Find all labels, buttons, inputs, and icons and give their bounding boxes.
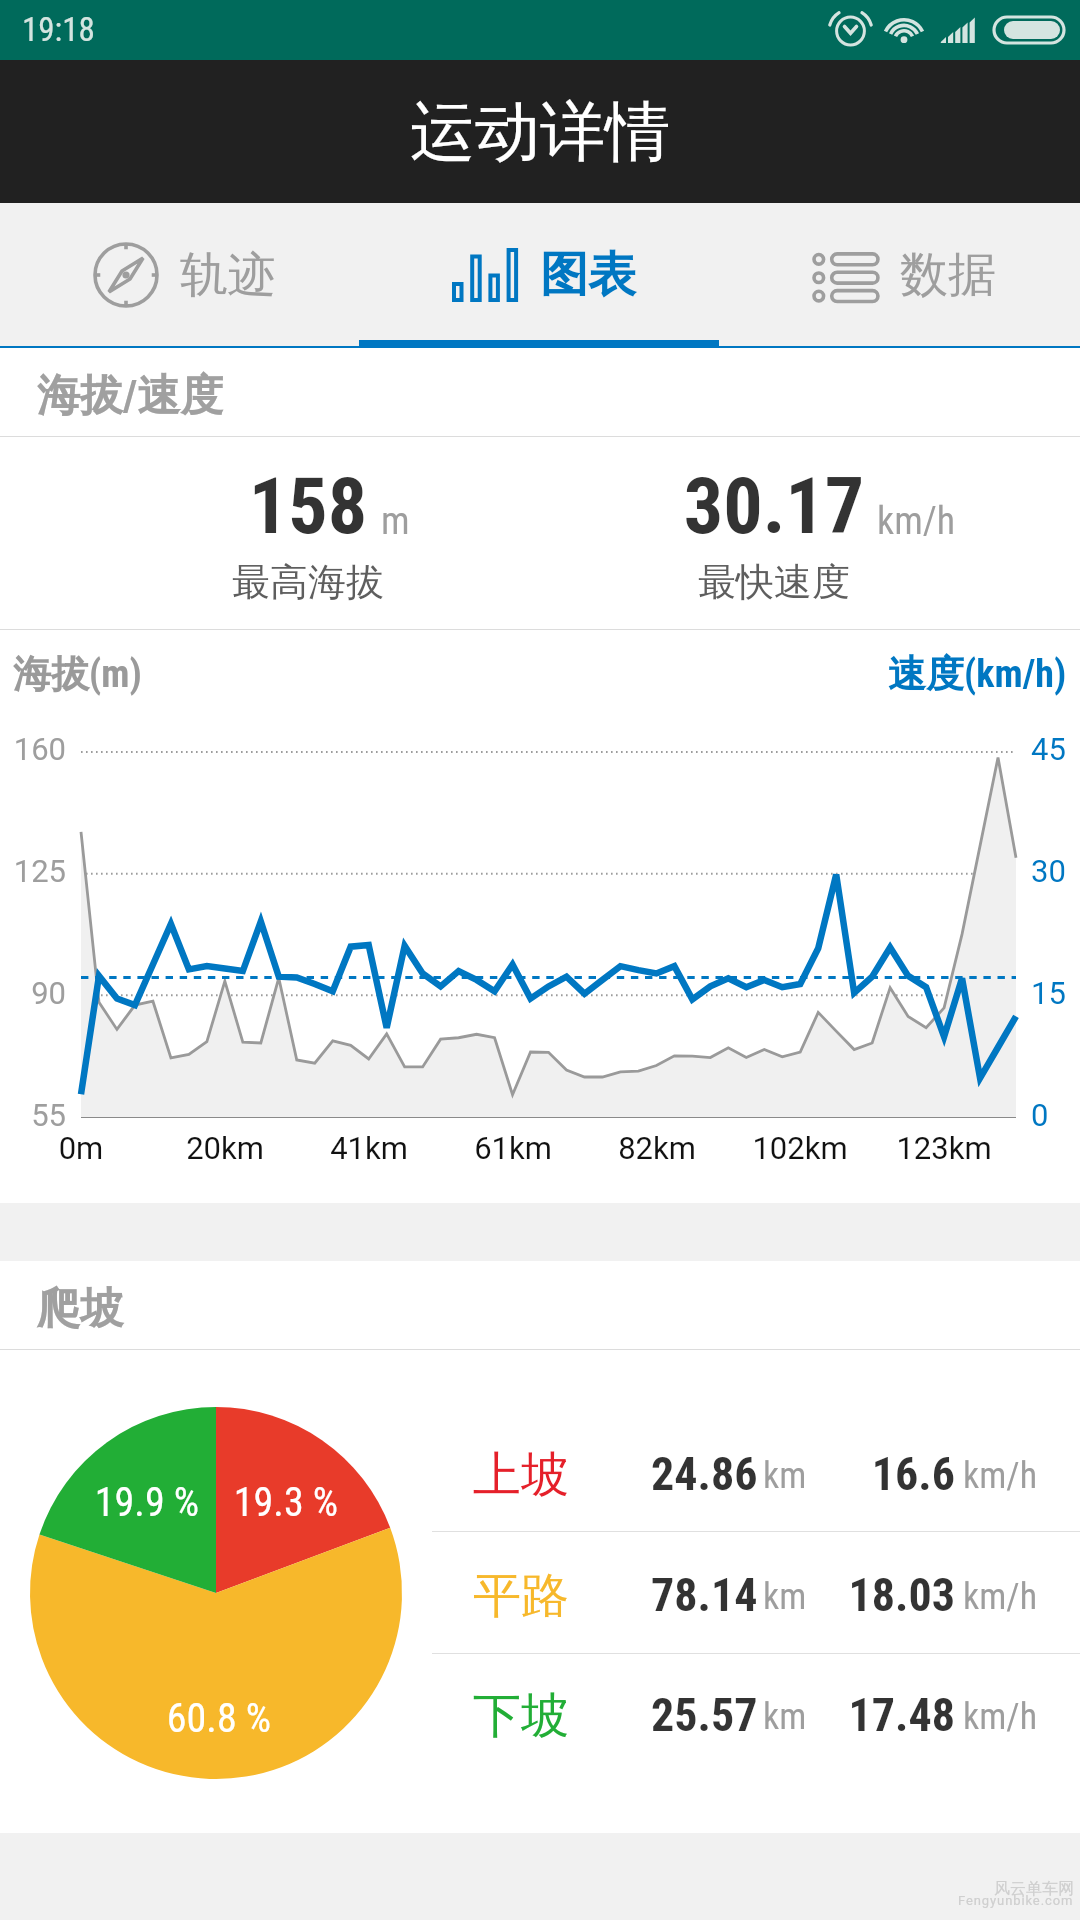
staticText: 数据 <box>900 245 996 305</box>
staticText: km <box>763 1696 807 1738</box>
staticText: 78.14 <box>651 1568 758 1622</box>
button[interactable] <box>432 1537 1080 1659</box>
staticText: km <box>763 1455 807 1497</box>
staticText: Fengyunbike.com <box>958 1893 1074 1908</box>
button[interactable]: 数据 <box>720 203 1080 348</box>
staticText: 爬坡 <box>37 1282 123 1336</box>
staticText: 19.3 % <box>166 1479 406 1526</box>
staticText: 19.9 % <box>27 1479 267 1526</box>
staticText: 风云单车网 <box>994 1879 1074 1899</box>
staticText: 158 <box>78 461 538 552</box>
button[interactable]: 轨迹 <box>0 203 360 348</box>
staticText: 20km <box>145 1130 305 1166</box>
staticText: 下坡 <box>473 1686 569 1746</box>
staticText: 41km <box>289 1130 449 1166</box>
staticText: 图表 <box>540 245 636 305</box>
staticText: 最高海拔 <box>78 558 538 606</box>
staticText: 上坡 <box>473 1445 569 1505</box>
staticText: 最快速度 <box>544 558 1004 606</box>
staticText: km/h <box>963 1576 1038 1618</box>
staticText: km <box>763 1576 807 1618</box>
staticText: 55 <box>0 1097 66 1133</box>
staticText: 82km <box>577 1130 737 1166</box>
staticText: 102km <box>720 1130 880 1166</box>
staticText: 海拔/速度 <box>37 369 224 423</box>
staticText: 0m <box>1 1130 161 1166</box>
staticText: 125 <box>0 853 66 889</box>
staticText: 0 <box>1031 1097 1080 1133</box>
staticText: km/h <box>963 1696 1038 1738</box>
staticText: 123km <box>864 1130 1024 1166</box>
staticText: 19:18 <box>22 10 95 49</box>
staticText: 45 <box>1031 731 1080 767</box>
button[interactable]: 图表 <box>360 203 720 348</box>
staticText: m <box>381 499 410 544</box>
staticText: 17.48 <box>700 1688 955 1742</box>
staticText: 18.03 <box>700 1568 955 1622</box>
staticText: 90 <box>0 975 66 1011</box>
staticText: 平路 <box>473 1566 569 1626</box>
staticText: km/h <box>877 499 956 544</box>
staticText: 运动详情 <box>410 91 670 173</box>
staticText: 15 <box>1031 975 1080 1011</box>
staticText: 61km <box>433 1130 593 1166</box>
staticText: 16.6 <box>700 1447 955 1501</box>
staticText: 速度(km/h) <box>888 650 1067 698</box>
button[interactable] <box>432 1657 1080 1779</box>
staticText: 25.57 <box>651 1688 758 1742</box>
staticText: 160 <box>0 731 66 767</box>
staticText: km/h <box>963 1455 1038 1497</box>
staticText: 30.17 <box>544 461 1004 552</box>
staticText: 60.8 % <box>99 1695 339 1742</box>
button[interactable] <box>432 1416 1080 1538</box>
staticText: 海拔(m) <box>13 650 142 698</box>
staticText: 轨迹 <box>180 245 276 305</box>
staticText: 24.86 <box>651 1447 758 1501</box>
staticText: 30 <box>1031 853 1080 889</box>
